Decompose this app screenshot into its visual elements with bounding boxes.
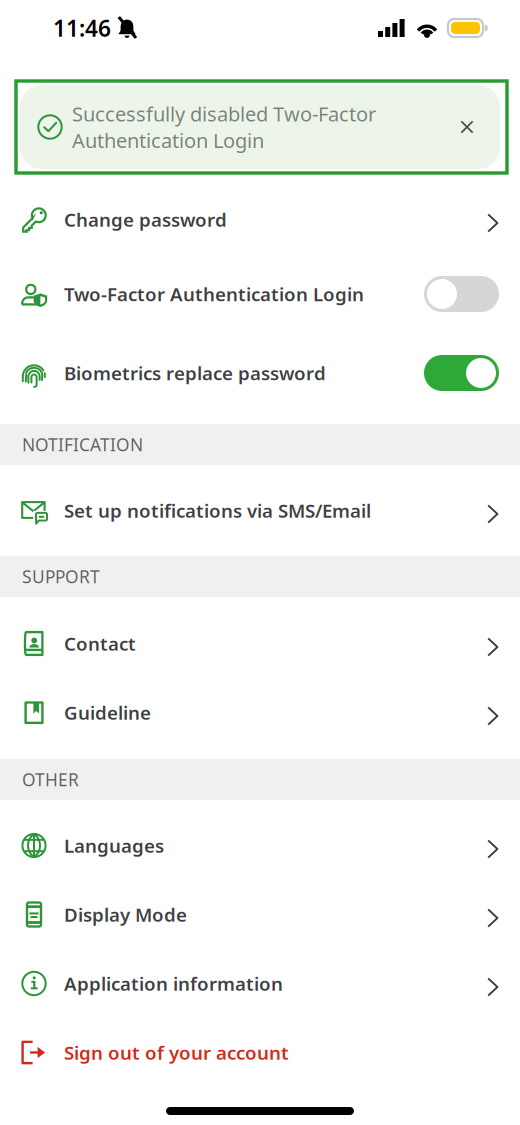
button[interactable]: Two-Factor Authentication Login xyxy=(0,254,520,334)
button[interactable]: Guideline xyxy=(0,678,520,747)
staticText: Guideline xyxy=(64,700,151,725)
staticText: Languages xyxy=(64,833,164,858)
button[interactable]: Display Mode xyxy=(0,880,520,949)
staticText: Biometrics replace password xyxy=(64,361,326,385)
button[interactable]: Languages xyxy=(0,811,520,880)
staticText: 11:46 xyxy=(53,13,111,43)
staticText: Successfully disabled Two-Factor Authent… xyxy=(72,100,376,153)
staticText: Change password xyxy=(64,207,227,232)
button[interactable]: Dismiss notification xyxy=(451,111,483,143)
button[interactable]: Change password xyxy=(0,185,520,254)
button[interactable]: Application information xyxy=(0,949,520,1018)
staticText: SUPPORT xyxy=(22,565,100,588)
staticText: Display Mode xyxy=(64,902,187,927)
button[interactable]: Set up notifications via SMS/Email xyxy=(0,476,520,545)
button[interactable]: Contact xyxy=(0,609,520,678)
staticText: Application information xyxy=(64,971,283,996)
staticText: Contact xyxy=(64,631,136,656)
staticText: OTHER xyxy=(22,768,79,791)
staticText: Two-Factor Authentication Login xyxy=(64,282,364,306)
staticText: NOTIFICATION xyxy=(22,433,143,456)
button[interactable]: Biometrics replace password xyxy=(0,334,520,412)
button[interactable]: Sign out of your account xyxy=(0,1018,520,1087)
staticText: Set up notifications via SMS/Email xyxy=(64,498,371,523)
staticText: Sign out of your account xyxy=(64,1040,289,1065)
